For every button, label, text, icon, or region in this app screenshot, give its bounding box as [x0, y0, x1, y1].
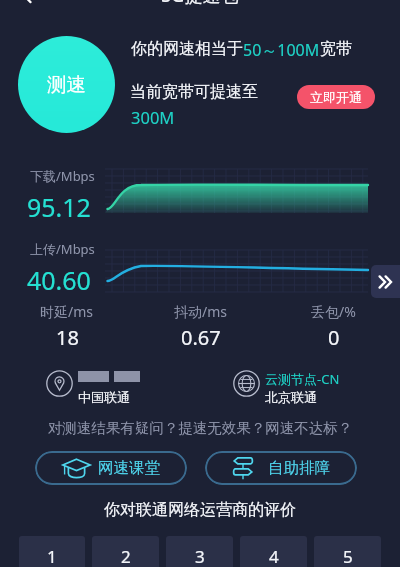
button[interactable]: 5 [314, 536, 381, 567]
staticText: 300M [131, 106, 175, 128]
button[interactable]: 丢包/% [267, 302, 400, 351]
staticText: 50～100M [243, 39, 320, 61]
staticText: 5 [343, 545, 353, 567]
staticText: 5G提速包 [161, 0, 239, 7]
staticText: 云测节点-CN [265, 370, 340, 388]
staticText: 你的网速相当于 [131, 39, 243, 59]
staticText: 0 [328, 324, 340, 351]
staticText: 下载/Mbps [30, 167, 95, 185]
button[interactable]: 网速课堂 [35, 451, 187, 485]
button[interactable]: 云测节点-CN [233, 369, 351, 405]
button[interactable]: 1 [19, 536, 85, 567]
staticText: 4 [269, 545, 279, 567]
staticText: 中国联通 [78, 389, 130, 405]
staticText: 时延/ms [40, 302, 94, 321]
button[interactable]: 抖动/ms [134, 302, 267, 351]
button[interactable]: 时延/ms [0, 302, 134, 351]
button[interactable]: 立即开通 [297, 85, 375, 109]
staticText: 你对联通网络运营商的评价 [0, 500, 400, 520]
staticText: 自助排障 [268, 458, 330, 478]
staticText: 95.12 [27, 190, 91, 224]
staticText: 40.60 [27, 263, 91, 297]
staticText: 0.67 [181, 324, 221, 351]
button[interactable]: More [371, 265, 400, 298]
staticText: 宽带 [320, 39, 352, 59]
button[interactable]: 自助排障 [205, 451, 357, 485]
staticText: 对测速结果有疑问？提速无效果？网速不达标？ [0, 419, 400, 437]
staticText: 1 [47, 545, 57, 567]
staticText: 当前宽带可提速至 [130, 82, 258, 102]
staticText: 网速课堂 [98, 458, 160, 478]
button[interactable]: 5G提速包 [0, 0, 400, 7]
staticText: 18 [56, 324, 79, 351]
button[interactable]: 2 [92, 536, 159, 567]
staticText: 抖动/ms [174, 302, 228, 321]
button[interactable]: 测速 [18, 36, 115, 133]
button[interactable]: 3 [166, 536, 233, 567]
button[interactable]: Back [14, 0, 42, 10]
staticText: 立即开通 [310, 89, 362, 105]
button[interactable]: 4 [240, 536, 307, 567]
button[interactable]: 中国联通 [46, 369, 151, 405]
staticText: 3 [195, 545, 205, 567]
staticText: 丢包/% [311, 302, 356, 321]
staticText: 测速 [47, 72, 86, 97]
staticText: 2 [121, 545, 131, 567]
staticText: 上传/Mbps [30, 240, 95, 258]
staticText: 北京联通 [265, 389, 317, 405]
